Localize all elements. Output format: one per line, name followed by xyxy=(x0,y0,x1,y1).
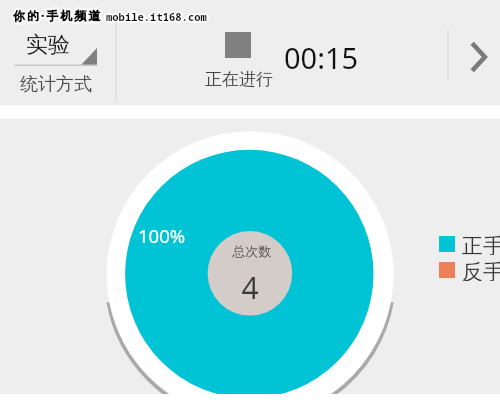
staticText: mobile.it168.com xyxy=(107,10,208,24)
staticText: 你的·手机频道 xyxy=(12,6,102,22)
button[interactable]: 停止 xyxy=(200,28,277,90)
staticText: 你的·手机频道 xyxy=(15,7,105,23)
staticText: 你的·手机频道 xyxy=(12,8,102,24)
staticText: mobile.it168.com xyxy=(108,10,209,24)
staticText: mobile.it168.com xyxy=(105,11,206,25)
button[interactable]: 正手 xyxy=(439,233,500,255)
staticText: 你的·手机频道 xyxy=(12,7,102,23)
staticText: 正在进行 xyxy=(205,69,273,90)
staticText: mobile.it168.com xyxy=(106,9,207,23)
staticText: 4 xyxy=(210,267,290,308)
staticText: mobile.it168.com xyxy=(105,10,206,24)
button[interactable]: 实验 xyxy=(14,28,98,90)
staticText: mobile.it168.com xyxy=(107,11,208,25)
staticText: mobile.it168.com xyxy=(106,11,207,25)
staticText: 你的·手机频道 xyxy=(13,9,103,25)
staticText: 00:15 xyxy=(284,38,359,77)
staticText: 你的·手机频道 xyxy=(13,5,103,21)
staticText: mobile.it168.com xyxy=(107,9,208,23)
button[interactable]: 下一步 xyxy=(456,30,500,84)
staticText: 正手 xyxy=(462,233,500,255)
staticText: 你的·手机频道 xyxy=(13,7,103,23)
staticText: 你的·手机频道 xyxy=(13,6,103,22)
staticText: 实验 xyxy=(26,31,70,59)
staticText: 总次数 xyxy=(212,243,292,259)
staticText: mobile.it168.com xyxy=(104,10,205,24)
staticText: 你的·手机频道 xyxy=(13,8,103,24)
staticText: 100% xyxy=(138,223,186,248)
staticText: 反手 xyxy=(462,259,500,281)
staticText: 你的·手机频道 xyxy=(14,6,104,22)
button[interactable]: 反手 xyxy=(439,259,500,281)
staticText: 你的·手机频道 xyxy=(14,8,104,24)
staticText: mobile.it168.com xyxy=(105,9,206,23)
staticText: mobile.it168.com xyxy=(106,8,207,22)
staticText: mobile.it168.com xyxy=(106,10,207,24)
staticText: 你的·手机频道 xyxy=(14,7,104,23)
staticText: mobile.it168.com xyxy=(106,12,207,26)
staticText: 你的·手机频道 xyxy=(11,7,101,23)
staticText: 统计方式 xyxy=(20,73,92,96)
